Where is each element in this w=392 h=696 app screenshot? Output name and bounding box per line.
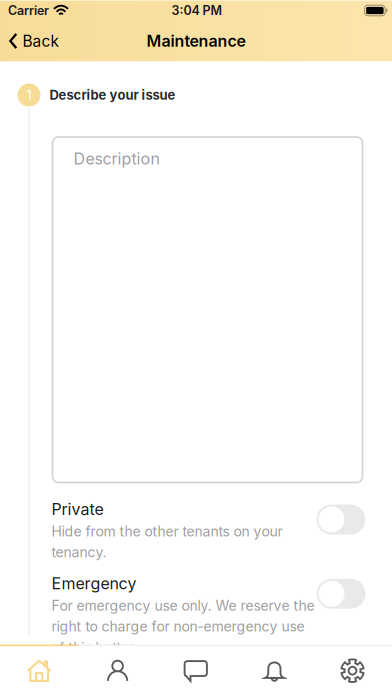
staticText: Emergency [51, 574, 136, 593]
staticText: Description [73, 149, 159, 168]
button[interactable]: Home [0, 646, 78, 695]
staticText: 1 [26, 87, 31, 103]
button[interactable]: Private [0, 499, 392, 561]
button[interactable]: Account [78, 646, 157, 695]
staticText: Describe your issue [49, 87, 175, 103]
staticText: Carrier [8, 3, 49, 18]
button[interactable]: Messages [157, 646, 235, 695]
staticText: Back [23, 32, 60, 50]
button[interactable]: Back [0, 26, 60, 56]
staticText: Private [51, 499, 103, 519]
button[interactable]: Settings [314, 646, 392, 695]
staticText: Hide from the other tenants on your tena… [51, 523, 282, 561]
button[interactable]: Description [52, 137, 362, 482]
staticText: Maintenance [146, 31, 245, 51]
staticText: For emergency use only. We reserve the r… [51, 597, 314, 656]
staticText: 3:04 PM [171, 3, 222, 18]
button[interactable]: Notifications [235, 646, 314, 695]
button[interactable]: Emergency [0, 574, 392, 656]
